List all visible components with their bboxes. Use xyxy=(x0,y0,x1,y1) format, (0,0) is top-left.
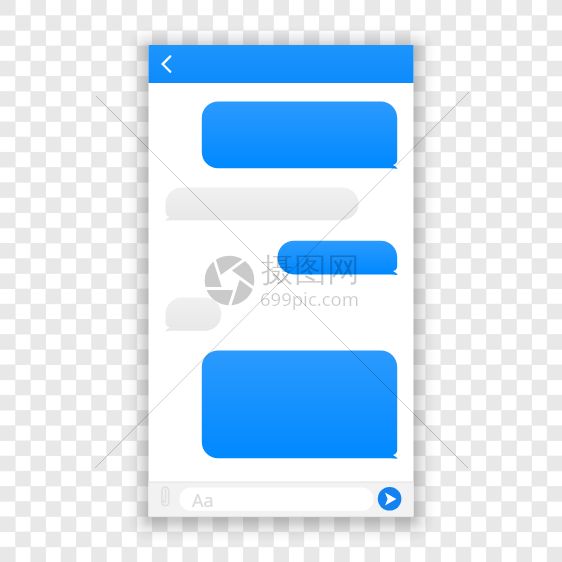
button[interactable]: Attach file xyxy=(157,484,177,514)
button[interactable]: Message input xyxy=(179,487,374,511)
staticText: Aa xyxy=(192,488,214,513)
staticText: 699pic.com xyxy=(260,286,360,311)
button[interactable]: Send xyxy=(377,486,403,512)
button[interactable]: Back xyxy=(149,45,191,83)
staticText: 摄图网 xyxy=(261,249,360,291)
